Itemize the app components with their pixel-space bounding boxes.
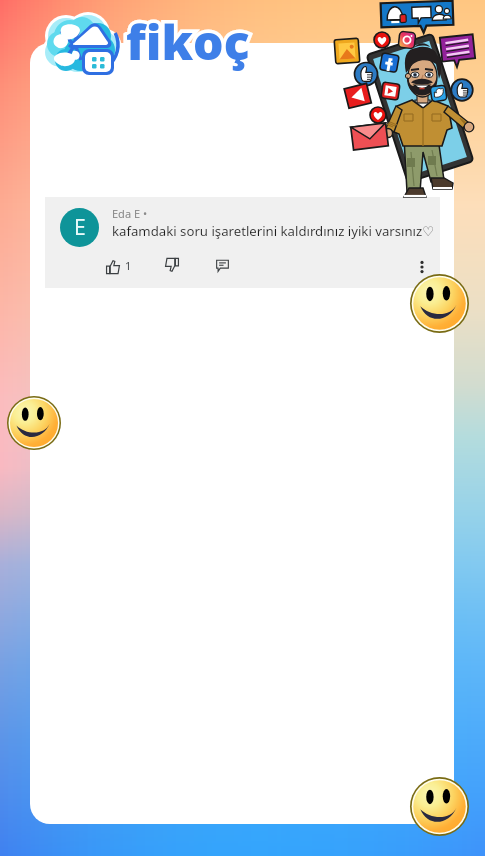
staticText: Eda E • — [112, 206, 148, 221]
button[interactable]: More options — [408, 253, 436, 281]
button[interactable]: Reply — [207, 250, 237, 280]
staticText: fikoç — [126, 9, 250, 74]
button[interactable]: Dislike — [157, 250, 187, 280]
staticText: fikoç — [126, 9, 250, 74]
staticText: 1 — [125, 258, 132, 273]
staticText: kafamdaki soru işaretlerini kaldırdınız … — [112, 222, 435, 240]
button[interactable]: fikoç — [40, 10, 265, 90]
staticText: E — [74, 213, 86, 242]
button[interactable]: E — [45, 197, 440, 288]
button[interactable]: 1 — [106, 250, 140, 280]
